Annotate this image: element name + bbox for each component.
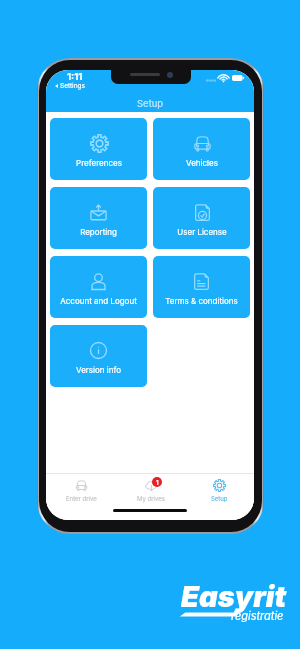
staticText: Settings <box>60 82 85 90</box>
button[interactable]: Preferences <box>50 118 147 180</box>
button[interactable]: User License <box>153 187 250 249</box>
staticText: Enter drive <box>66 495 97 502</box>
button[interactable]: Reporting <box>50 187 147 249</box>
staticText: Setup <box>211 495 228 502</box>
staticText: Account and Logout <box>60 296 137 306</box>
staticText: Vehicles <box>186 158 218 168</box>
button[interactable]: Terms & conditions <box>153 256 250 318</box>
button[interactable]: Vehicles <box>153 118 250 180</box>
staticText: Reporting <box>80 227 117 237</box>
staticText: Preferences <box>76 158 122 168</box>
button[interactable]: Setup <box>185 474 254 504</box>
button[interactable]: Enter drive <box>46 474 116 504</box>
staticText: User License <box>177 227 227 237</box>
staticText: My drives <box>137 495 165 502</box>
button[interactable]: Version info <box>50 325 147 387</box>
button[interactable]: 1 <box>116 474 185 504</box>
staticText: 1:11 <box>67 71 83 82</box>
button[interactable]: Account and Logout <box>50 256 147 318</box>
staticText: Easyrit <box>181 579 287 614</box>
staticText: registratie <box>231 609 284 622</box>
staticText: 1 <box>156 479 159 486</box>
staticText: Version info <box>76 365 121 375</box>
button[interactable]: Settings <box>55 82 85 90</box>
staticText: Setup <box>137 98 164 109</box>
staticText: Terms & conditions <box>165 296 238 306</box>
